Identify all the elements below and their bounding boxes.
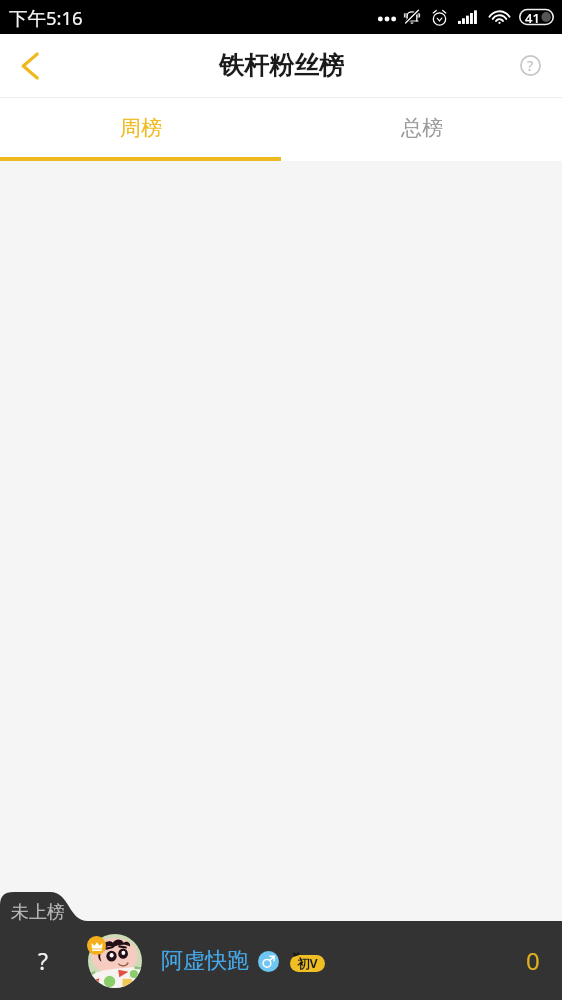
button[interactable]: 周榜 bbox=[0, 98, 281, 157]
button[interactable]: ? bbox=[0, 921, 562, 1000]
staticText: 铁杆粉丝榜 bbox=[219, 50, 344, 81]
staticText: ? bbox=[38, 945, 48, 976]
staticText: 周榜 bbox=[120, 115, 162, 141]
button[interactable]: Back bbox=[0, 34, 60, 97]
button[interactable]: Help bbox=[498, 34, 562, 97]
staticText: 未上榜 bbox=[11, 901, 65, 924]
button[interactable]: 总榜 bbox=[281, 98, 562, 157]
staticText: 41 bbox=[525, 9, 540, 25]
staticText: 0 bbox=[526, 944, 540, 977]
staticText: 总榜 bbox=[401, 115, 443, 141]
staticText: 阿虚快跑 bbox=[161, 947, 249, 975]
button[interactable]: 未上榜 bbox=[0, 892, 76, 921]
staticText: 下午5:16 bbox=[9, 5, 83, 30]
staticText: 初V bbox=[297, 955, 318, 972]
staticText: ? bbox=[527, 56, 534, 75]
